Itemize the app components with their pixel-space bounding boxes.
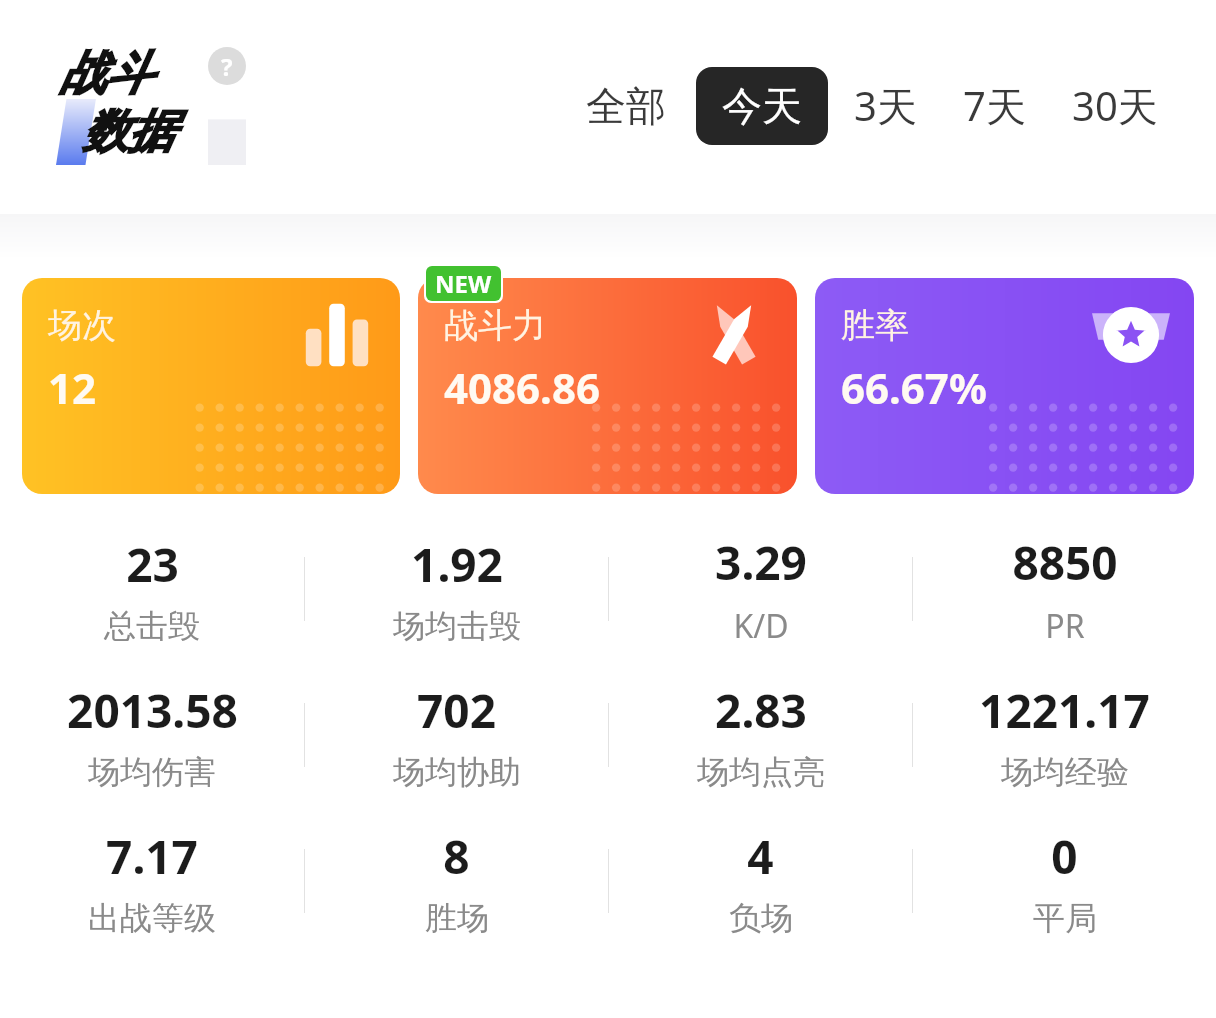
staticText: 4 bbox=[747, 825, 774, 888]
staticText: 负场 bbox=[729, 898, 793, 938]
staticText: 胜率 bbox=[841, 304, 909, 347]
staticText: 23 bbox=[126, 533, 179, 596]
staticText: 3.29 bbox=[715, 531, 807, 594]
staticText: 平局 bbox=[1033, 898, 1097, 938]
staticText: 胜场 bbox=[425, 898, 489, 938]
button[interactable]: 8850 bbox=[913, 516, 1216, 662]
button[interactable]: 2013.58 bbox=[0, 662, 304, 808]
staticText: 战斗力 bbox=[444, 304, 546, 347]
button[interactable]: 2.83 bbox=[609, 662, 912, 808]
staticText: 场均伤害 bbox=[88, 752, 216, 792]
staticText: 场次 bbox=[48, 304, 116, 347]
button[interactable]: Help bbox=[208, 47, 246, 85]
staticText: 1221.17 bbox=[979, 679, 1150, 742]
button[interactable]: 今天 bbox=[696, 67, 828, 145]
button[interactable]: 30天 bbox=[1064, 64, 1166, 147]
button[interactable]: 场次 bbox=[22, 278, 400, 494]
button[interactable]: 全部 bbox=[578, 67, 674, 145]
staticText: 出战等级 bbox=[88, 898, 216, 938]
staticText: 30天 bbox=[1072, 78, 1158, 133]
staticText: 今天 bbox=[722, 81, 802, 131]
button[interactable]: 3天 bbox=[846, 64, 925, 147]
staticText: NEW bbox=[435, 267, 492, 300]
staticText: 总击毁 bbox=[104, 606, 200, 646]
staticText: 3天 bbox=[854, 78, 917, 133]
button[interactable]: 战斗力 bbox=[418, 278, 797, 494]
staticText: 8 bbox=[443, 825, 470, 888]
button[interactable]: 7.17 bbox=[0, 808, 304, 954]
button[interactable]: 胜率 bbox=[815, 278, 1194, 494]
staticText: 702 bbox=[417, 679, 496, 742]
staticText: 7.17 bbox=[106, 825, 198, 888]
staticText: ? bbox=[221, 50, 233, 83]
staticText: 7天 bbox=[963, 78, 1026, 133]
button[interactable]: 8 bbox=[305, 808, 608, 954]
staticText: K/D bbox=[733, 604, 789, 648]
staticText: 2.83 bbox=[715, 679, 807, 742]
staticText: 2013.58 bbox=[67, 679, 238, 742]
staticText: 场均点亮 bbox=[697, 752, 825, 792]
button[interactable]: 3.29 bbox=[609, 516, 912, 662]
button[interactable]: 战斗 bbox=[56, 45, 246, 165]
button[interactable]: 7天 bbox=[955, 64, 1034, 147]
button[interactable]: 4 bbox=[609, 808, 912, 954]
staticText: 场均经验 bbox=[1001, 752, 1129, 792]
staticText: 4086.86 bbox=[444, 359, 600, 416]
staticText: 1.92 bbox=[411, 533, 503, 596]
staticText: 12 bbox=[48, 359, 97, 416]
staticText: 全部 bbox=[586, 81, 666, 131]
staticText: 数据 bbox=[82, 103, 174, 161]
staticText: 场均协助 bbox=[393, 752, 521, 792]
staticText: 66.67% bbox=[841, 359, 987, 416]
staticText: PR bbox=[1045, 604, 1085, 648]
staticText: 战斗 bbox=[60, 45, 152, 103]
button[interactable]: 1.92 bbox=[305, 516, 608, 662]
button[interactable]: 702 bbox=[305, 662, 608, 808]
staticText: 0 bbox=[1051, 825, 1078, 888]
button[interactable]: 1221.17 bbox=[913, 662, 1216, 808]
button[interactable]: 23 bbox=[0, 516, 304, 662]
button[interactable]: 0 bbox=[913, 808, 1216, 954]
staticText: 8850 bbox=[1012, 531, 1118, 594]
staticText: 场均击毁 bbox=[393, 606, 521, 646]
